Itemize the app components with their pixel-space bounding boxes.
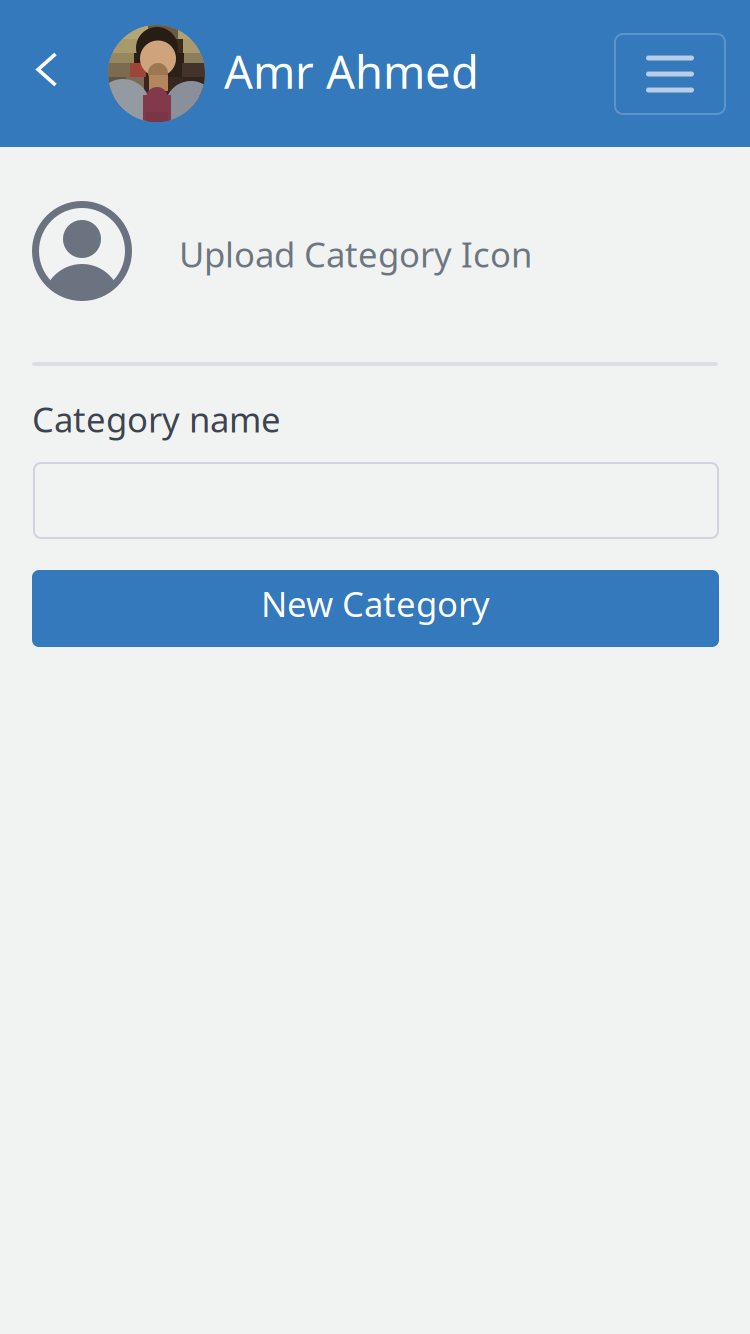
button[interactable]: Menu: [615, 34, 725, 114]
staticText: Category name: [32, 396, 281, 442]
button[interactable]: Category name text field: [33, 462, 719, 539]
staticText: New Category: [261, 580, 490, 626]
button[interactable]: Back: [3, 0, 91, 143]
staticText: Amr Ahmed: [224, 41, 479, 101]
button[interactable]: New Category: [32, 570, 719, 647]
button[interactable]: Upload Category Icon: [32, 201, 718, 301]
staticText: Upload Category Icon: [179, 231, 532, 277]
